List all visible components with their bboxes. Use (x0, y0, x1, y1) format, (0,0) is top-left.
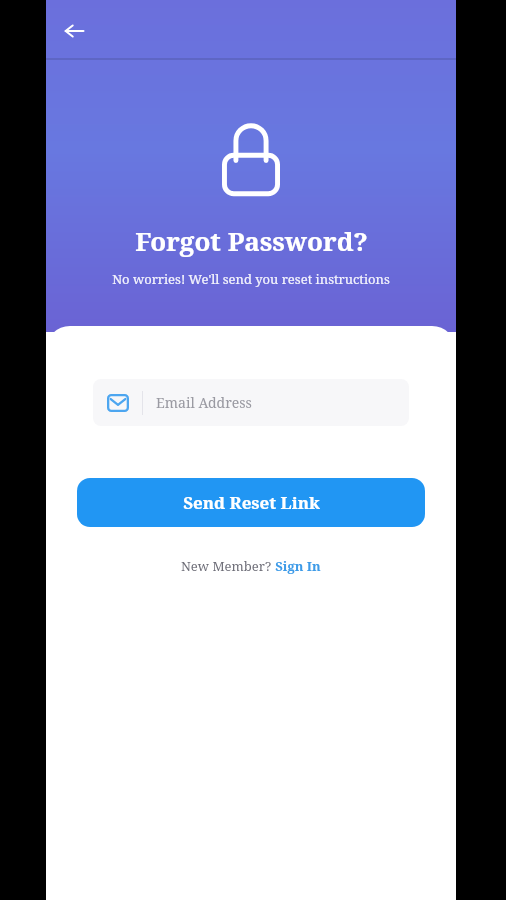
button[interactable]: Back (52, 9, 96, 53)
staticText: Sign In (275, 557, 321, 575)
staticText: Send Reset Link (183, 491, 320, 514)
button[interactable]: Email Address (93, 379, 409, 426)
staticText: Email Address (156, 393, 252, 412)
staticText: Forgot Password? (135, 223, 368, 258)
button[interactable]: Send Reset Link (77, 478, 425, 527)
staticText: No worries! We'll send you reset instruc… (112, 270, 390, 288)
button[interactable]: Sign In (273, 555, 323, 577)
staticText: New Member? (179, 557, 273, 575)
